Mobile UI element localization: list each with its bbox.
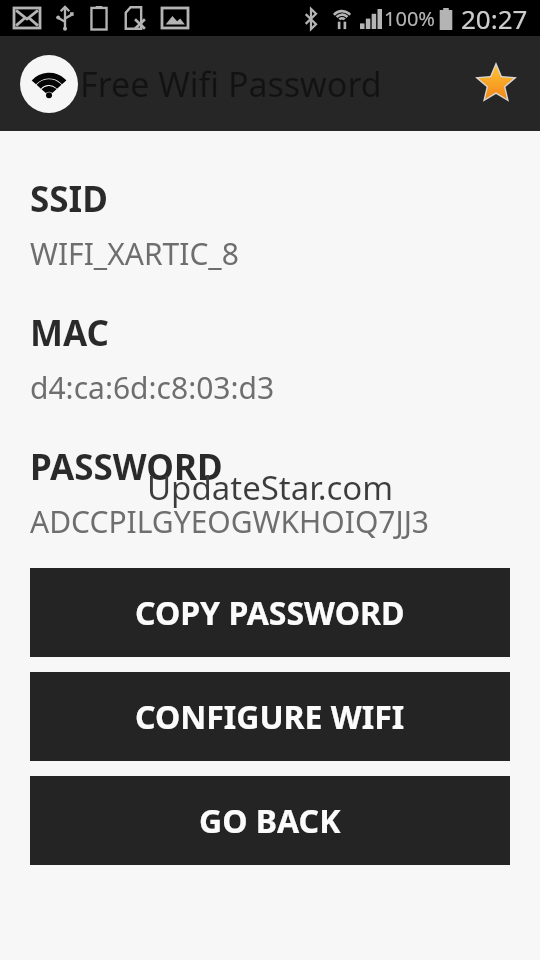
staticText: 100% bbox=[384, 5, 435, 32]
staticText: CONFIGURE WIFI bbox=[135, 695, 405, 739]
staticText: Free Wifi Password bbox=[80, 61, 382, 107]
staticText: d4:ca:6d:c8:03:d3 bbox=[30, 367, 275, 408]
staticText: COPY PASSWORD bbox=[135, 591, 405, 635]
staticText: GO BACK bbox=[199, 799, 341, 843]
staticText: SSID bbox=[30, 175, 108, 223]
button[interactable]: CONFIGURE WIFI bbox=[30, 672, 510, 761]
staticText: 20:27 bbox=[461, 1, 528, 36]
staticText: WIFI_XARTIC_8 bbox=[30, 233, 239, 274]
button[interactable]: COPY PASSWORD bbox=[30, 568, 510, 657]
staticText: UpdateStar.com bbox=[147, 465, 394, 510]
button[interactable]: GO BACK bbox=[30, 776, 510, 865]
staticText: ADCCPILGYEOGWKHOIQ7JJ3 bbox=[30, 501, 430, 542]
button[interactable]: Favorite bbox=[468, 56, 524, 112]
staticText: PASSWORD bbox=[30, 443, 223, 491]
staticText: MAC bbox=[30, 309, 109, 357]
